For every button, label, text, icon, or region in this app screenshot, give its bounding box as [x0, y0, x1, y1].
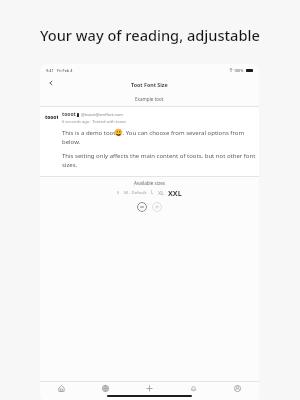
button[interactable]: Explore [83, 382, 127, 394]
button[interactable]: Account [215, 382, 259, 394]
staticText: XL [158, 189, 164, 196]
staticText: Example toot [135, 96, 164, 102]
staticText: This setting only affects the main conte… [62, 152, 256, 169]
staticText: 9:41 [46, 68, 54, 73]
button[interactable]: Back [46, 80, 55, 89]
staticText: This is a demo toot😀. You can choose fro… [62, 129, 256, 146]
button[interactable]: S [115, 190, 122, 195]
button[interactable]: M - Default [122, 189, 149, 195]
button[interactable]: L [149, 189, 156, 196]
staticText: Your way of reading, adjustable [40, 25, 260, 45]
button[interactable]: Home [40, 382, 83, 394]
staticText: XXL [168, 188, 182, 196]
button[interactable]: Compose [127, 382, 171, 394]
button[interactable]: Notifications [171, 382, 215, 394]
button[interactable]: XXL [166, 188, 184, 196]
button[interactable]: XL [156, 189, 166, 196]
staticText: S [117, 190, 120, 195]
staticText: 100% [234, 68, 244, 73]
staticText: M - Default [124, 189, 147, 195]
staticText: tooot [62, 111, 76, 118]
staticText: L [151, 189, 154, 196]
staticText: 6 seconds ago · Tooted with tooot [62, 119, 127, 125]
staticText: Available sizes [134, 180, 165, 186]
button[interactable]: Decrease font size [137, 202, 147, 212]
staticText: Fri Feb 4 [57, 68, 73, 73]
staticText: @tooot@xmflsct.com [81, 112, 123, 118]
staticText: tooot [45, 114, 58, 121]
button[interactable]: Increase font size [152, 202, 162, 212]
staticText: Toot Font Size [131, 81, 168, 88]
